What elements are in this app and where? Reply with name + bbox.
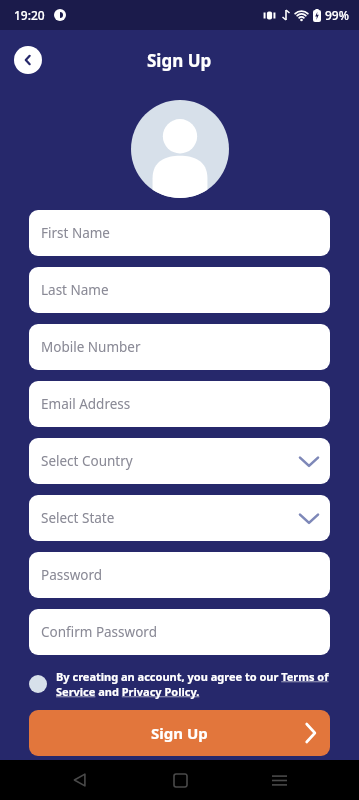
button[interactable]: Back (60, 760, 100, 800)
staticText: Email Address (41, 395, 131, 413)
staticText: Last Name (41, 281, 109, 299)
button[interactable]: Select Country (29, 438, 330, 484)
staticText: By creating an account, you agree to our… (56, 669, 330, 699)
button[interactable]: First Name (29, 210, 330, 256)
button[interactable]: Password (29, 552, 330, 598)
button[interactable]: Last Name (29, 267, 330, 313)
button[interactable]: By creating an account, you agree to our… (29, 669, 330, 699)
button[interactable]: Home (160, 760, 200, 800)
staticText: 19:20 (14, 7, 45, 23)
button[interactable]: Sign Up (29, 710, 330, 756)
staticText: Mobile Number (41, 338, 141, 356)
staticText: First Name (41, 224, 110, 242)
staticText: Sign Up (147, 49, 212, 72)
staticText: Password (41, 566, 103, 584)
button[interactable]: Back (14, 46, 42, 74)
button[interactable]: Mobile Number (29, 324, 330, 370)
staticText: 99% (325, 7, 349, 23)
button[interactable]: Recent apps (259, 760, 299, 800)
button[interactable]: Email Address (29, 381, 330, 427)
staticText: Select State (41, 509, 115, 527)
staticText: Confirm Password (41, 623, 157, 641)
staticText: Sign Up (151, 723, 208, 743)
button[interactable]: Confirm Password (29, 609, 330, 655)
button[interactable]: Select State (29, 495, 330, 541)
staticText: Select Country (41, 452, 133, 470)
